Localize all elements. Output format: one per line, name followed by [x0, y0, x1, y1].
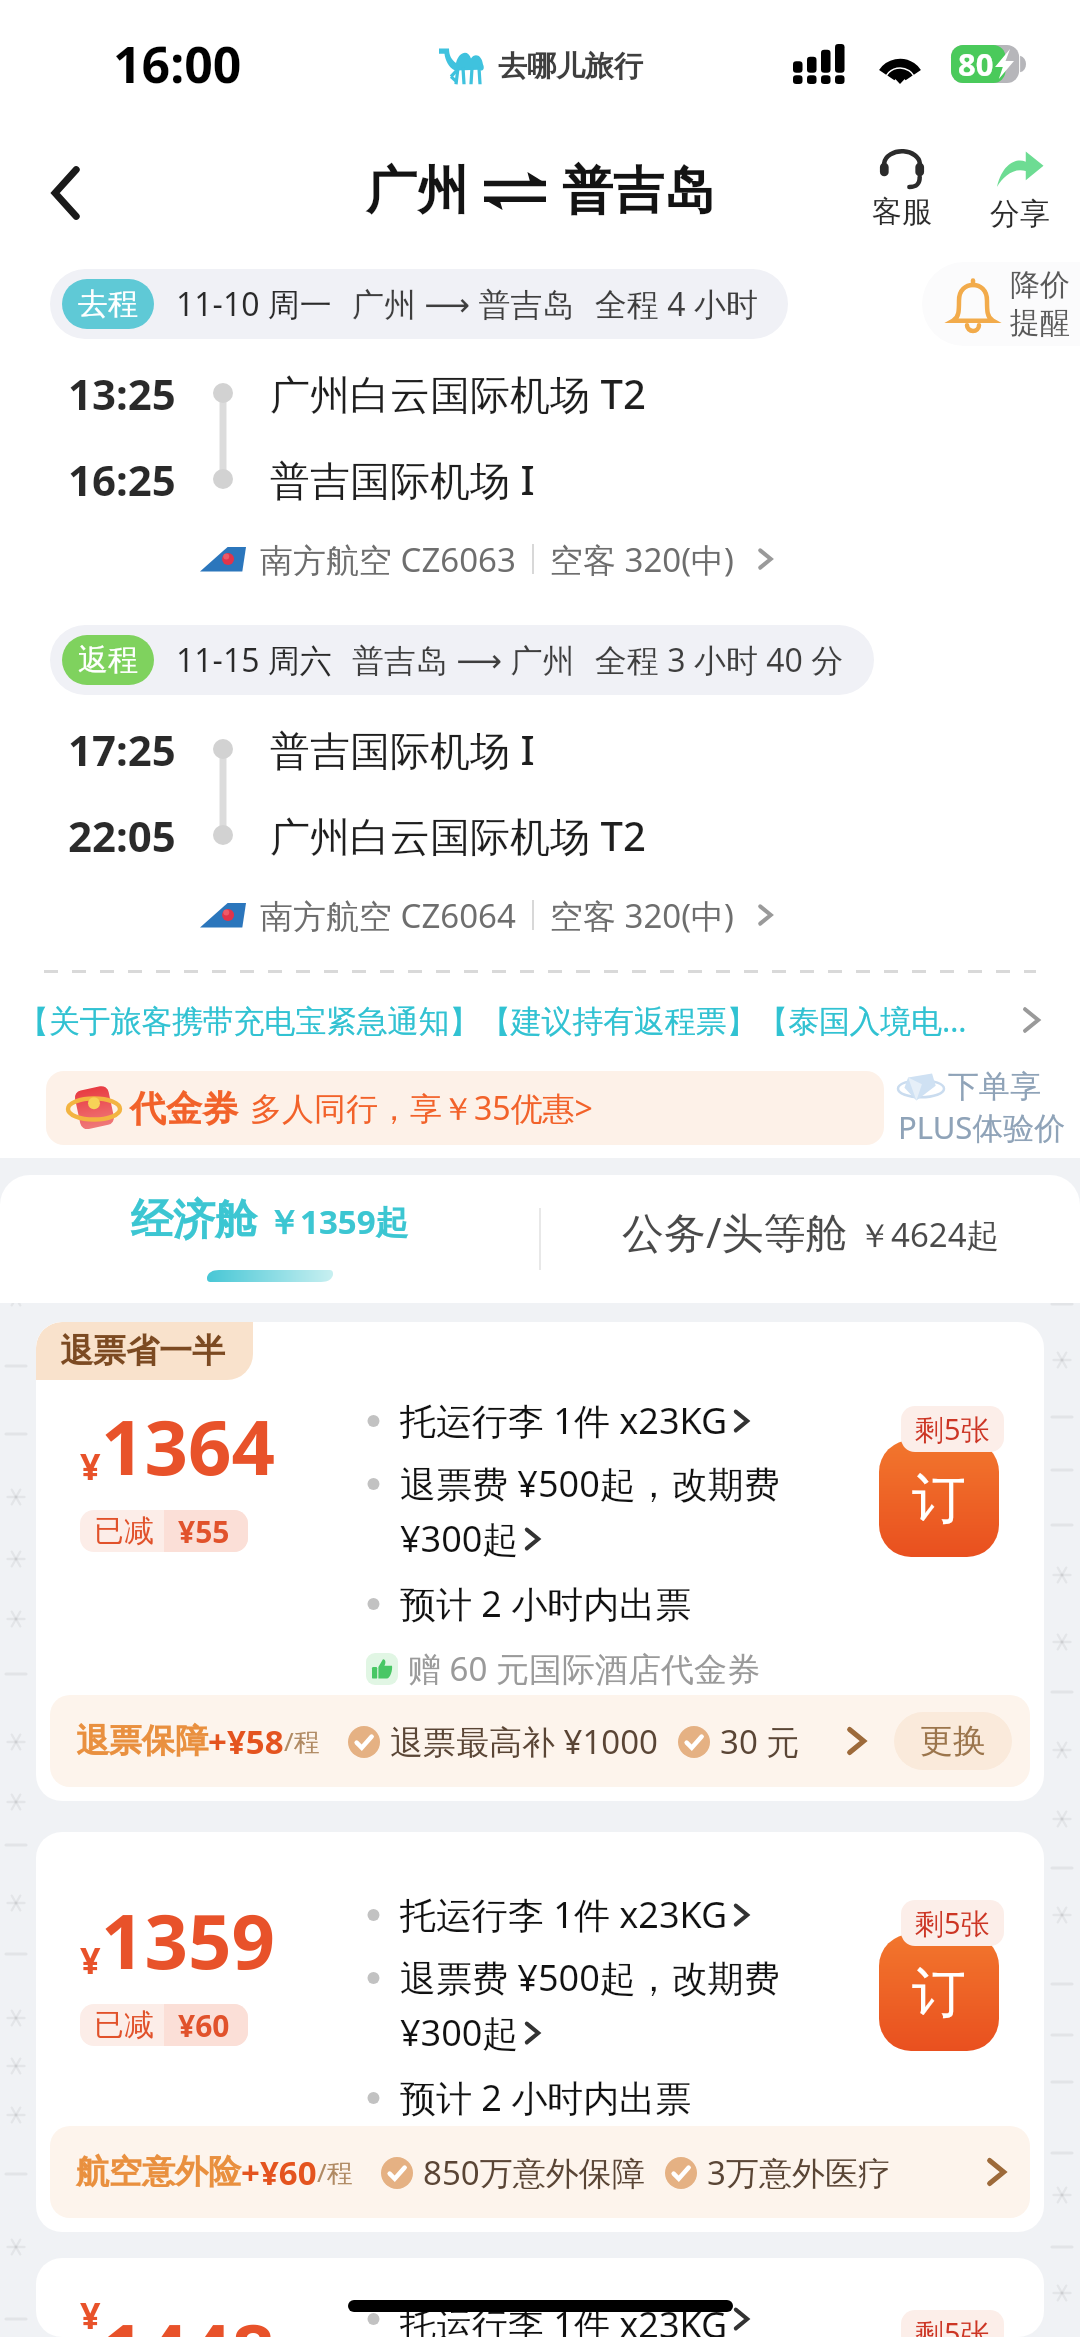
- staticText: 剩5张: [915, 1903, 990, 1943]
- button[interactable]: ¥: [36, 2258, 1044, 2337]
- button[interactable]: 航空意外险: [50, 2126, 1030, 2218]
- staticText: 退票最高补 ¥1000: [390, 1719, 658, 1764]
- staticText: 托运行李 1件 x23KG: [400, 1890, 728, 1939]
- staticText: PLUS体验价: [898, 1106, 1066, 1148]
- staticText: 已减: [94, 1512, 154, 1550]
- staticText: 80: [958, 43, 994, 85]
- staticText: ¥55: [178, 1511, 230, 1552]
- button[interactable]: 返回: [24, 151, 108, 235]
- staticText: 南方航空 CZ6064: [260, 893, 516, 938]
- button[interactable]: 代金券: [46, 1071, 884, 1145]
- staticText: 1359: [101, 1888, 275, 1992]
- staticText: 提醒: [1010, 304, 1070, 342]
- button[interactable]: 降价: [922, 262, 1080, 346]
- staticText: +¥58: [208, 1719, 284, 1764]
- staticText: 全程 3 小时 40 分: [595, 638, 844, 682]
- staticText: ￥4624起: [858, 1212, 1000, 1257]
- button[interactable]: 订: [879, 1440, 999, 1557]
- staticText: 订: [912, 1959, 966, 2027]
- staticText: 30 元: [720, 1719, 800, 1764]
- staticText: 13:25: [68, 365, 176, 422]
- staticText: 剩5张: [915, 1409, 990, 1449]
- button[interactable]: 退票省一半: [36, 1322, 1044, 1801]
- staticText: 普吉国际机场 I: [270, 452, 535, 507]
- staticText: /程: [317, 2154, 353, 2190]
- staticText: 订: [912, 1465, 966, 1533]
- staticText: 广州 ⟶ 普吉岛: [352, 282, 575, 326]
- staticText: 退票费 ¥500起，改期费: [400, 1953, 780, 2002]
- staticText: ¥300起: [400, 2008, 519, 2057]
- staticText: 更换: [920, 1720, 986, 1762]
- staticText: 16:25: [68, 451, 176, 508]
- button[interactable]: 更换: [894, 1712, 1012, 1770]
- staticText: ¥: [80, 2291, 101, 2330]
- staticText: ¥300起: [400, 1514, 519, 1563]
- staticText: 返程: [78, 641, 138, 679]
- staticText: 普吉岛 ⟶ 广州: [352, 638, 575, 682]
- button[interactable]: 南方航空 CZ6064: [200, 888, 1080, 942]
- staticText: 空客 320(中): [550, 893, 735, 938]
- staticText: 850万意外保障: [423, 2150, 645, 2195]
- staticText: 代金券: [130, 1086, 238, 1131]
- staticText: 11-15 周六: [176, 638, 332, 682]
- staticText: 降价: [1010, 266, 1070, 304]
- staticText: 普吉国际机场 I: [270, 722, 535, 777]
- staticText: 预计 2 小时内出票: [400, 2073, 692, 2122]
- staticText: 广州白云国际机场 T2: [270, 366, 646, 421]
- staticText: 11-10 周一: [176, 282, 332, 326]
- staticText: 广州: [366, 159, 468, 223]
- button[interactable]: 订: [879, 1934, 999, 2051]
- staticText: 广州白云国际机场 T2: [270, 808, 646, 863]
- staticText: 全程 4 小时: [595, 282, 758, 326]
- staticText: 去哪儿旅行: [498, 48, 643, 85]
- button[interactable]: 经济舱: [0, 1175, 539, 1303]
- staticText: 航空意外险: [76, 2151, 241, 2193]
- staticText: 托运行李 1件 x23KG: [400, 1396, 728, 1445]
- button[interactable]: 【关于旅客携带充电宝紧急通知】【建议持有返程票】【泰国入境电…: [18, 973, 1046, 1067]
- staticText: 经济舱: [131, 1194, 257, 1247]
- staticText: 预计 2 小时内出票: [400, 1579, 692, 1628]
- staticText: 下单享: [948, 1067, 1041, 1106]
- staticText: 【关于旅客携带充电宝紧急通知】【建议持有返程票】【泰国入境电…: [18, 999, 967, 1041]
- button[interactable]: 南方航空 CZ6063: [200, 532, 1080, 586]
- staticText: +¥60: [241, 2150, 317, 2195]
- button[interactable]: 分享: [974, 143, 1066, 239]
- staticText: 1364: [101, 1394, 275, 1498]
- staticText: 22:05: [68, 807, 176, 864]
- staticText: 剩5张: [915, 2313, 990, 2337]
- staticText: 去程: [78, 285, 138, 323]
- staticText: 3万意外医疗: [707, 2150, 891, 2195]
- staticText: 南方航空 CZ6063: [260, 537, 516, 582]
- staticText: 多人同行，享￥35优惠>: [250, 1086, 593, 1130]
- staticText: 公务/头等舱: [622, 1203, 848, 1260]
- staticText: ¥60: [178, 2005, 230, 2046]
- button[interactable]: 退票保障: [50, 1695, 1030, 1787]
- button[interactable]: ¥: [36, 1832, 1044, 2232]
- staticText: ¥: [80, 1442, 101, 1491]
- staticText: 16:00: [113, 30, 242, 98]
- staticText: 赠 60 元国际酒店代金券: [408, 1646, 760, 1691]
- staticText: 空客 320(中): [550, 537, 735, 582]
- staticText: 退票省一半: [60, 1330, 225, 1372]
- staticText: 已减: [94, 2006, 154, 2044]
- staticText: 退票保障: [76, 1720, 208, 1762]
- button[interactable]: 客服: [856, 143, 948, 237]
- staticText: 17:25: [68, 721, 176, 778]
- button[interactable]: 公务/头等舱: [541, 1175, 1080, 1303]
- staticText: ¥: [80, 1936, 101, 1985]
- staticText: 分享: [990, 195, 1050, 233]
- staticText: 客服: [872, 193, 932, 231]
- staticText: 退票费 ¥500起，改期费: [400, 1459, 780, 1508]
- staticText: ￥1359起: [267, 1199, 409, 1244]
- staticText: /程: [284, 1723, 320, 1759]
- staticText: 普吉岛: [562, 159, 715, 223]
- staticText: 1448: [101, 2298, 275, 2337]
- staticText: 托运行李 1件 x23KG: [400, 2300, 728, 2337]
